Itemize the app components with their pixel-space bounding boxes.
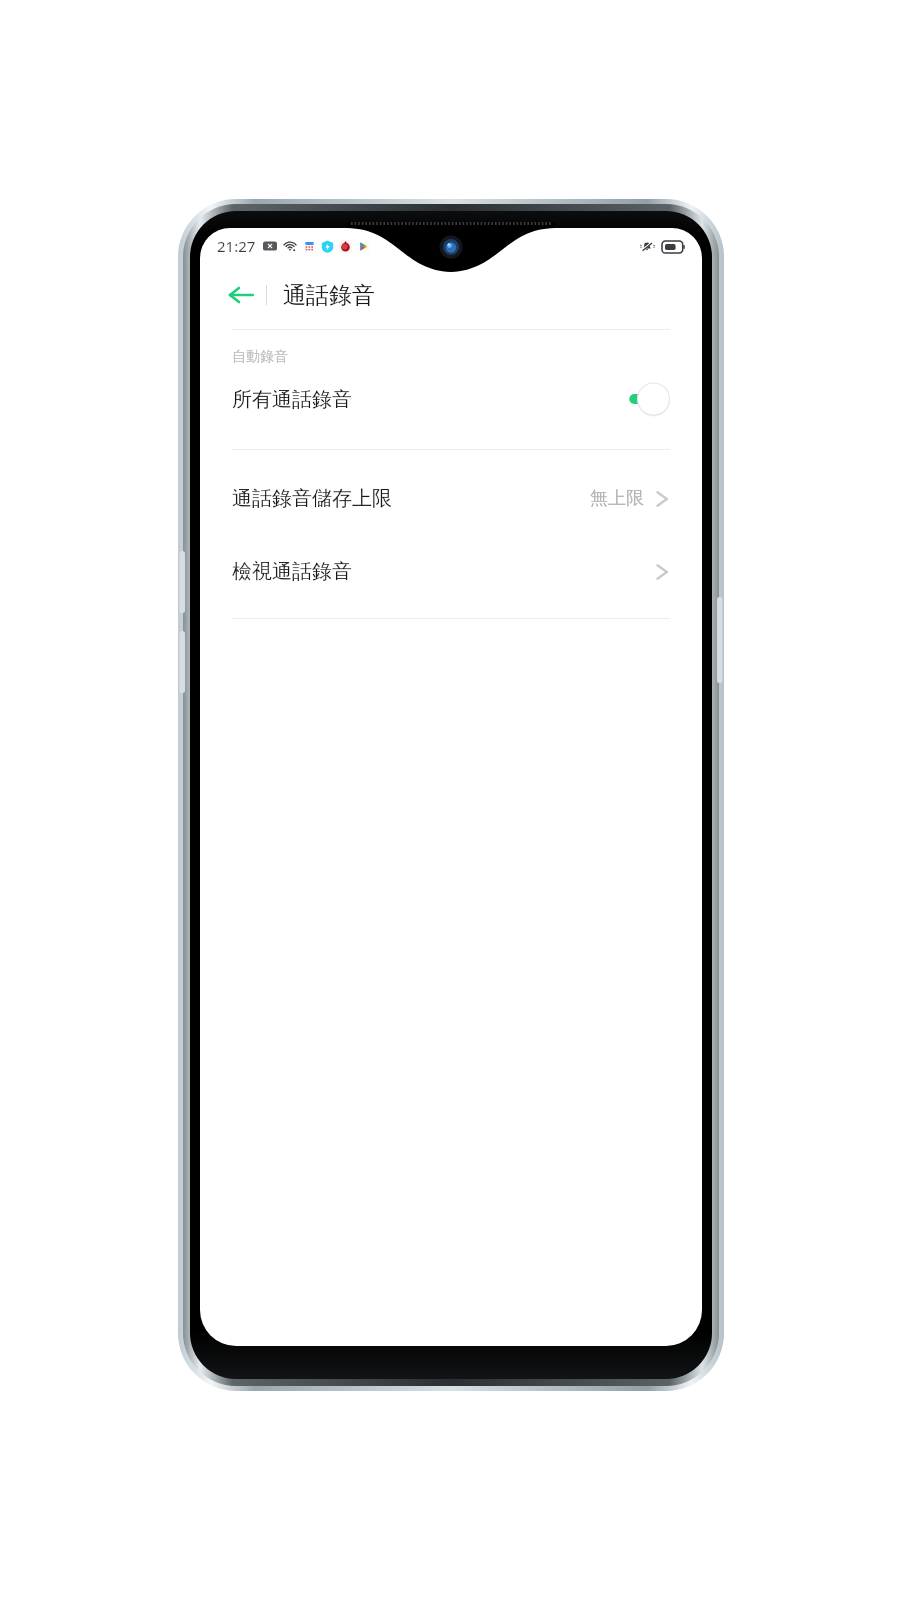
button[interactable]: 通話錄音儲存上限 (200, 462, 702, 535)
staticText: 21:27 (217, 236, 256, 256)
button[interactable]: 檢視通話錄音 (200, 535, 702, 608)
staticText: 檢視通話錄音 (232, 559, 352, 584)
button[interactable]: Back (220, 274, 262, 316)
button[interactable]: Toggle all call recording (628, 382, 670, 416)
button[interactable]: 所有通話錄音 (200, 366, 702, 432)
staticText: 通話錄音 (283, 281, 375, 310)
staticText: 通話錄音儲存上限 (232, 486, 392, 511)
staticText: 自動錄音 (232, 348, 288, 366)
staticText: 無上限 (590, 487, 644, 510)
staticText: 所有通話錄音 (232, 387, 352, 412)
